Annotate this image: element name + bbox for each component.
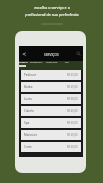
button[interactable]: Search	[76, 51, 81, 56]
staticText: PEDICURE	[46, 61, 58, 64]
button[interactable]: Manicure	[21, 130, 81, 140]
button[interactable]: Pedicure	[21, 70, 81, 80]
staticText: R$ 90,00	[67, 97, 78, 101]
staticText: Cabelo	[24, 109, 34, 113]
staticText: R$ 35,00	[67, 73, 78, 77]
staticText: Spa	[24, 121, 30, 125]
staticText: Corte	[24, 145, 32, 149]
button[interactable]: Corte	[21, 142, 81, 152]
staticText: BARBEARIA	[30, 61, 43, 64]
staticText: Barba	[24, 85, 33, 89]
staticText: Manicure	[24, 133, 38, 137]
staticText: R$ 60,00	[67, 121, 78, 125]
staticText: Luzes	[24, 97, 32, 101]
staticText: profissional de sua preferência	[25, 12, 79, 17]
staticText: escolha o serviço e o	[34, 5, 70, 10]
staticText: Pedicure	[24, 73, 37, 77]
button[interactable]: Cabelo	[21, 106, 81, 116]
button[interactable]: BARBEARIA	[30, 61, 43, 70]
staticText: SPA	[65, 61, 70, 64]
button[interactable]: Back	[21, 51, 27, 57]
button[interactable]: PEDICURE	[46, 61, 58, 70]
staticText: R$ 20,00	[67, 133, 78, 137]
button[interactable]: Spa	[21, 118, 81, 128]
staticText: CABELO	[19, 61, 28, 64]
staticText: R$ 30,00	[67, 145, 78, 149]
button[interactable]: SPA	[65, 61, 70, 70]
button[interactable]: Luzes	[21, 94, 81, 104]
staticText: R$ 45,00	[67, 109, 78, 113]
staticText: SERVIÇOS	[44, 53, 59, 57]
button[interactable]: CABELO	[19, 61, 28, 70]
staticText: R$ 25,00	[67, 85, 78, 89]
button[interactable]: Barba	[21, 82, 81, 92]
